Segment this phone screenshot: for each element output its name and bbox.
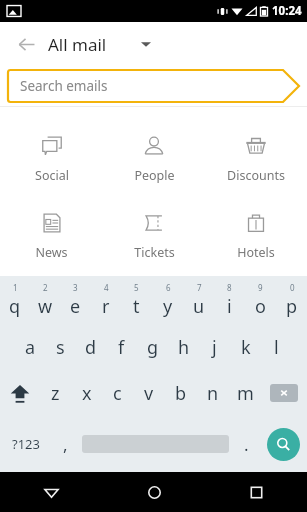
button[interactable]: 9 — [245, 276, 276, 324]
staticText: 1 — [13, 282, 18, 293]
staticText: k — [241, 335, 251, 360]
button[interactable]: Search emails — [8, 70, 299, 102]
staticText: e — [70, 294, 81, 319]
button[interactable]: 3 — [60, 276, 90, 324]
staticText: Search emails — [20, 77, 108, 95]
staticText: 0 — [290, 282, 295, 293]
staticText: v — [144, 381, 154, 406]
staticText: , — [63, 433, 68, 456]
staticText: Discounts — [227, 167, 285, 184]
staticText: w — [38, 294, 53, 319]
button[interactable]: h — [168, 324, 199, 370]
button[interactable] — [78, 416, 233, 472]
button[interactable]: 8 — [214, 276, 245, 324]
staticText: l — [274, 335, 279, 360]
button[interactable]: News — [0, 206, 103, 265]
staticText: z — [51, 381, 60, 406]
button[interactable]: s — [45, 324, 75, 370]
button[interactable]: Search — [259, 416, 307, 472]
staticText: ?123 — [12, 435, 40, 453]
staticText: j — [212, 335, 217, 360]
staticText: 6 — [166, 282, 171, 293]
staticText: 3 — [73, 282, 78, 293]
button[interactable]: 4 — [90, 276, 121, 324]
button[interactable]: Change folder — [133, 31, 159, 57]
staticText: 10:24 — [272, 3, 302, 19]
button[interactable]: Home — [103, 472, 205, 512]
button[interactable]: Shift — [0, 370, 40, 416]
button[interactable]: 2 — [30, 276, 60, 324]
button[interactable]: 0 — [276, 276, 307, 324]
button[interactable]: . — [233, 416, 259, 472]
staticText: o — [255, 294, 266, 319]
button[interactable]: 1 — [0, 276, 30, 324]
staticText: . — [244, 433, 249, 456]
button[interactable]: n — [197, 370, 229, 416]
staticText: News — [35, 244, 68, 261]
button[interactable]: , — [52, 416, 78, 472]
button[interactable]: People — [103, 129, 205, 188]
staticText: m — [237, 381, 254, 406]
button[interactable]: Hotels — [205, 206, 307, 265]
staticText: x — [82, 381, 92, 406]
button[interactable]: z — [40, 370, 71, 416]
button[interactable]: Back — [0, 472, 103, 512]
staticText: y — [163, 294, 173, 319]
staticText: s — [56, 335, 65, 360]
button[interactable]: l — [261, 324, 292, 370]
staticText: t — [133, 294, 140, 319]
staticText: All mail — [48, 33, 107, 56]
button[interactable]: d — [75, 324, 106, 370]
staticText: Social — [35, 167, 69, 184]
staticText: b — [175, 381, 187, 406]
staticText: 5 — [134, 282, 139, 293]
button[interactable]: Discounts — [205, 129, 307, 188]
staticText: 4 — [104, 282, 109, 293]
button[interactable]: v — [133, 370, 165, 416]
staticText: People — [134, 167, 175, 184]
button[interactable]: b — [165, 370, 197, 416]
button[interactable]: 6 — [152, 276, 183, 324]
button[interactable]: Recent apps — [205, 472, 307, 512]
button[interactable]: m — [229, 370, 261, 416]
staticText: q — [9, 294, 21, 319]
staticText: f — [118, 335, 125, 360]
button[interactable]: k — [230, 324, 261, 370]
staticText: Tickets — [134, 244, 175, 261]
staticText: u — [193, 294, 205, 319]
button[interactable]: j — [199, 324, 230, 370]
button[interactable]: Back — [8, 26, 44, 62]
staticText: Hotels — [237, 244, 275, 261]
staticText: 9 — [258, 282, 263, 293]
staticText: p — [286, 294, 298, 319]
staticText: d — [85, 335, 97, 360]
staticText: 8 — [227, 282, 232, 293]
staticText: 7 — [197, 282, 202, 293]
button[interactable]: ?123 — [0, 416, 52, 472]
button[interactable]: x — [71, 370, 102, 416]
staticText: a — [25, 335, 36, 360]
button[interactable]: 7 — [183, 276, 214, 324]
button[interactable]: g — [137, 324, 168, 370]
button[interactable]: 5 — [121, 276, 152, 324]
button[interactable]: Tickets — [103, 206, 205, 265]
staticText: n — [207, 381, 219, 406]
button[interactable]: c — [102, 370, 133, 416]
button[interactable]: Social — [0, 129, 103, 188]
staticText: i — [227, 294, 232, 319]
button[interactable]: a — [15, 324, 45, 370]
staticText: r — [102, 294, 110, 319]
staticText: h — [178, 335, 190, 360]
staticText: g — [147, 335, 159, 360]
button[interactable]: f — [106, 324, 137, 370]
staticText: 2 — [43, 282, 48, 293]
staticText: c — [113, 381, 122, 406]
button[interactable]: Backspace — [261, 370, 307, 416]
